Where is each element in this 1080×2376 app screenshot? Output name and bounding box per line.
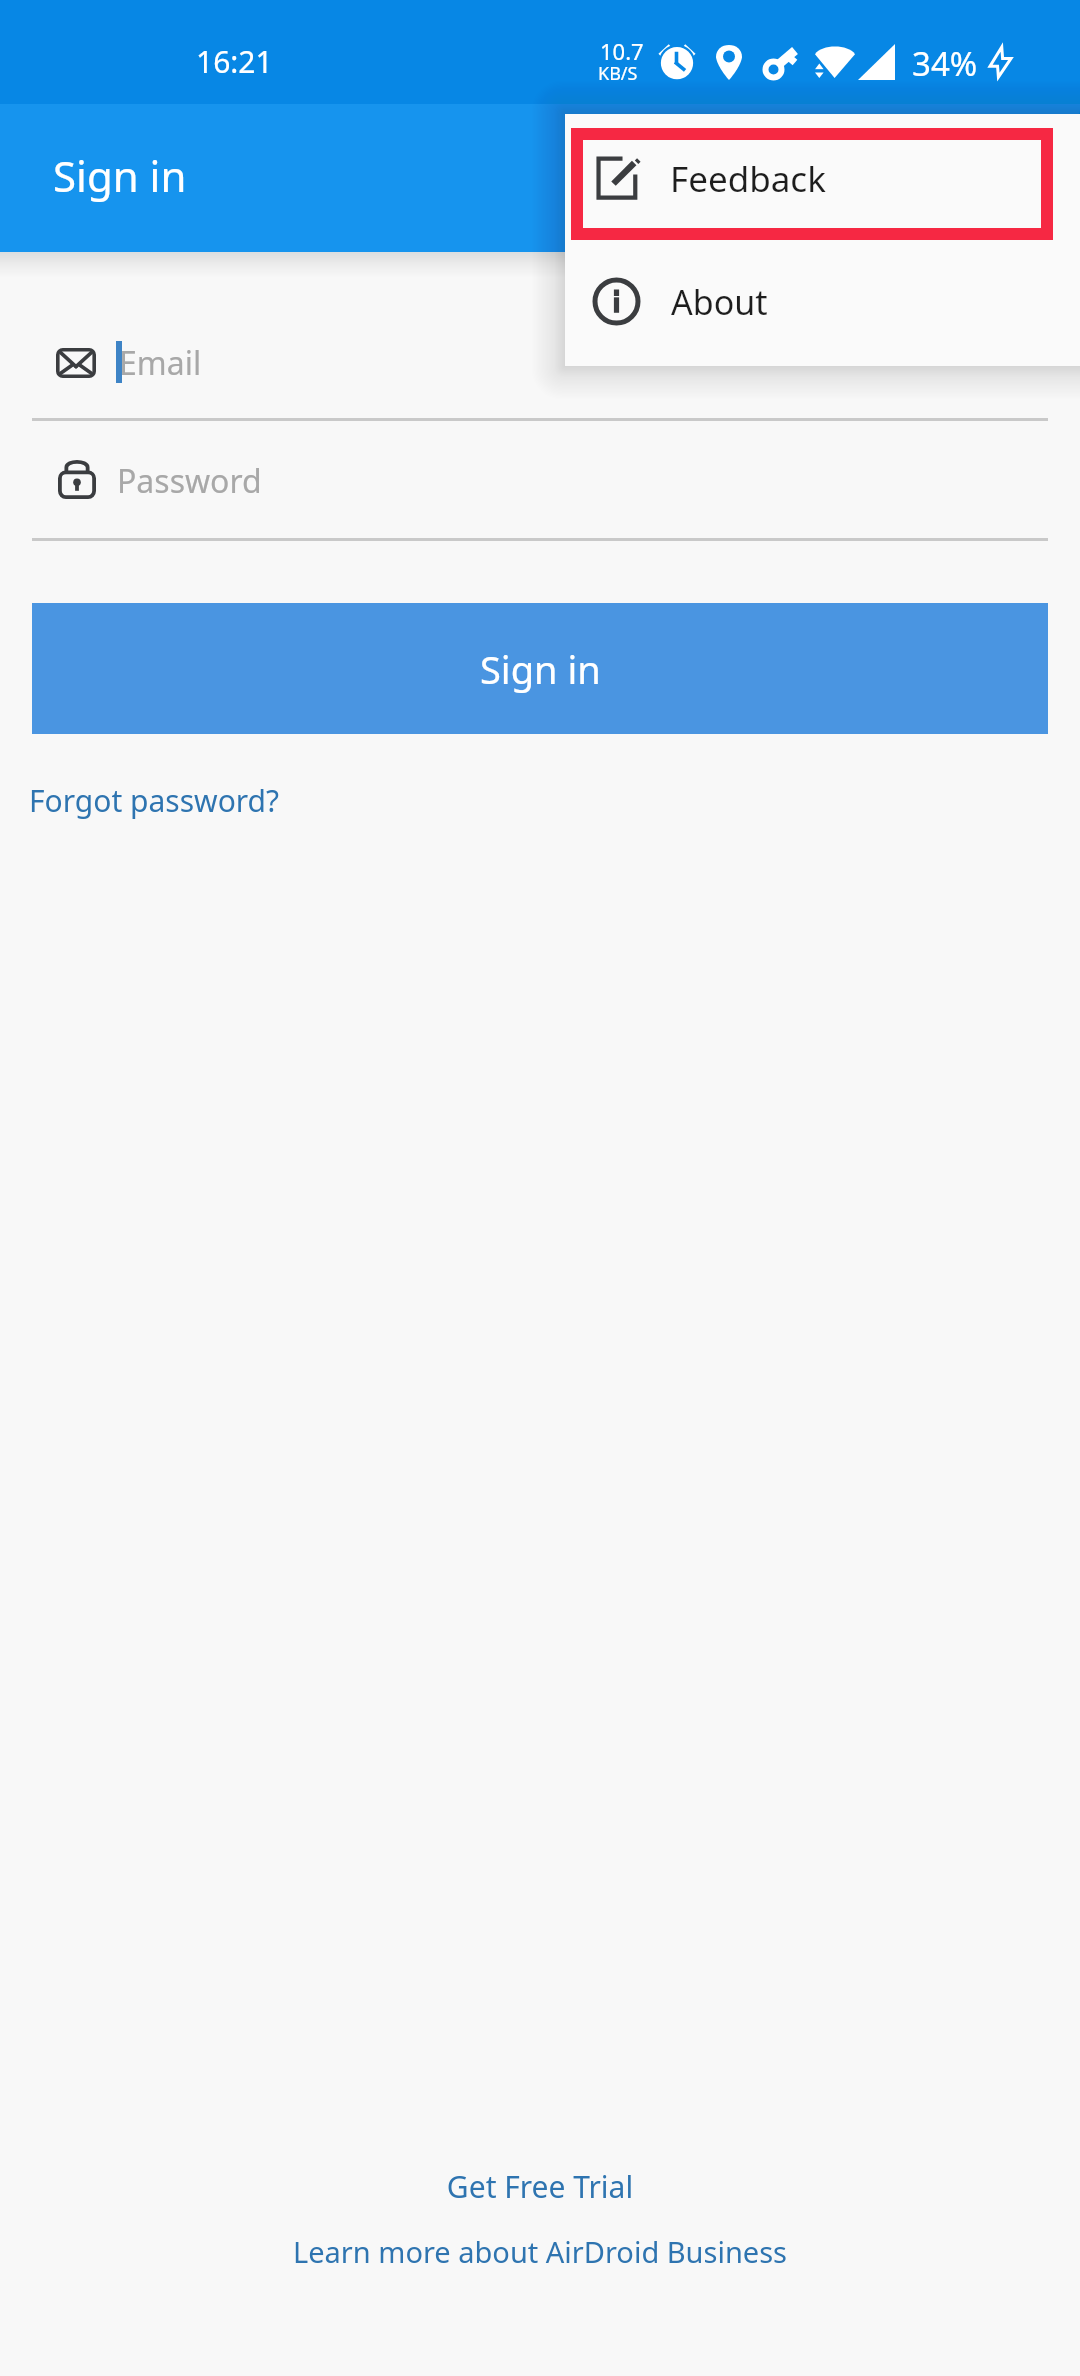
staticText: Feedback — [670, 155, 826, 203]
staticText: Password — [117, 459, 262, 503]
other: About — [592, 277, 641, 326]
button[interactable]: Feedback — [565, 114, 1080, 240]
button[interactable]: Forgot password? — [29, 772, 289, 828]
button[interactable]: Learn more about AirDroid Business — [0, 2224, 1080, 2276]
staticText: 10.7 — [600, 36, 644, 66]
staticText: KB/S — [598, 61, 638, 86]
staticText: 16:21 — [196, 41, 273, 82]
staticText: About — [671, 279, 768, 325]
button[interactable]: Email — [32, 330, 1048, 421]
staticText: Forgot password? — [29, 780, 280, 821]
staticText: Sign in — [53, 147, 187, 204]
button[interactable]: Password — [32, 450, 1048, 541]
staticText: 34% — [912, 41, 978, 86]
button[interactable]: Sign in — [32, 603, 1048, 734]
staticText: Email — [119, 341, 202, 385]
staticText: Sign in — [480, 643, 601, 695]
button[interactable]: About — [565, 240, 1080, 366]
other: Feedback — [597, 157, 641, 201]
staticText: Get Free Trial — [0, 2166, 1080, 2207]
staticText: Learn more about AirDroid Business — [0, 2232, 1080, 2271]
button[interactable]: Get Free Trial — [0, 2158, 1080, 2210]
